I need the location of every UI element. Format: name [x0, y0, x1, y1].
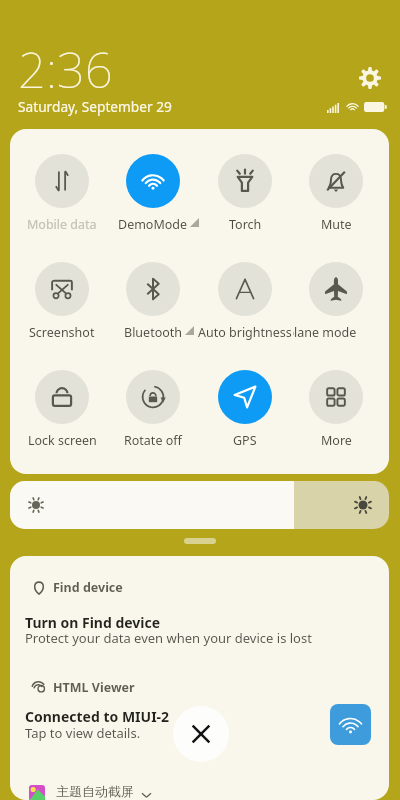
- button[interactable]: Close notifications: [173, 706, 229, 762]
- button[interactable]: Screenshot: [35, 262, 89, 316]
- staticText: Auto brightness: [198, 324, 292, 341]
- button[interactable]: Rotate off: [126, 370, 180, 424]
- button[interactable]: Settings: [354, 62, 386, 94]
- staticText: 2:36: [18, 36, 113, 103]
- button[interactable]: 主题自动截屏: [10, 780, 389, 800]
- button[interactable]: Auto brightness: [218, 262, 272, 316]
- staticText: Torch: [229, 216, 262, 233]
- button[interactable]: Wi-Fi: [330, 704, 371, 745]
- staticText: Connected to MIUI-2: [25, 707, 170, 726]
- staticText: GPS: [233, 432, 257, 449]
- button[interactable]: Torch: [218, 154, 272, 208]
- staticText: More: [321, 432, 352, 449]
- button[interactable]: More: [309, 370, 363, 424]
- staticText: Screenshot: [29, 324, 95, 341]
- staticText: DemoMode: [118, 216, 188, 233]
- button[interactable]: Bluetooth: [126, 262, 180, 316]
- button[interactable]: Brightness: [10, 481, 389, 529]
- staticText: Rotate off: [124, 432, 182, 449]
- button[interactable]: HTML Viewer: [10, 667, 389, 757]
- button[interactable]: Mobile data: [35, 154, 89, 208]
- button[interactable]: Airplane mode: [309, 262, 363, 316]
- button[interactable]: Mute: [309, 154, 363, 208]
- staticText: Mobile data: [27, 216, 97, 233]
- staticText: Saturday, September 29: [18, 97, 172, 116]
- button[interactable]: DemoMode: [126, 154, 180, 208]
- staticText: Protect your data even when your device …: [25, 629, 312, 647]
- staticText: Turn on Find device: [25, 613, 161, 632]
- staticText: Airplane mode: [293, 324, 357, 341]
- button[interactable]: Find device: [10, 566, 389, 666]
- staticText: Bluetooth: [124, 324, 183, 341]
- staticText: Mute: [321, 216, 352, 233]
- button[interactable]: Lock screen: [35, 370, 89, 424]
- staticText: 主题自动截屏: [56, 783, 134, 799]
- staticText: Tap to view details.: [25, 724, 141, 742]
- button[interactable]: GPS: [218, 370, 272, 424]
- staticText: Lock screen: [28, 432, 97, 449]
- staticText: Find device: [53, 579, 123, 596]
- staticText: HTML Viewer: [53, 679, 135, 696]
